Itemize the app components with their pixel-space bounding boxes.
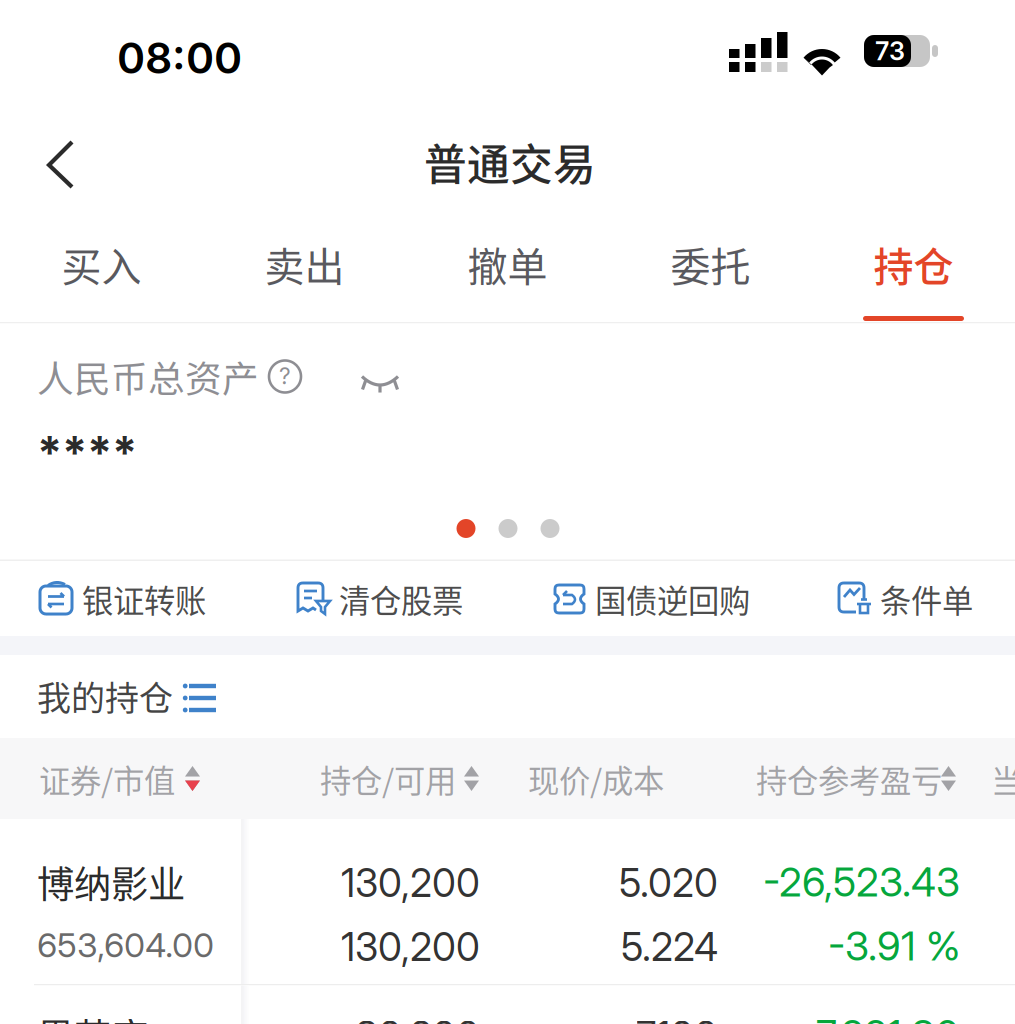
staticText: ****	[37, 425, 137, 480]
button[interactable]: 清仓股票	[295, 561, 510, 636]
staticText: ?	[279, 362, 291, 390]
staticText: 证券/市值	[39, 756, 175, 802]
staticText: 银证转账	[82, 576, 206, 622]
staticText: 5.020	[619, 860, 718, 906]
staticText: 130,200	[341, 924, 480, 970]
button[interactable]: Asset info	[269, 360, 301, 392]
staticText: 博纳影业	[37, 855, 185, 909]
staticText: 73	[875, 36, 905, 66]
staticText: 买入	[61, 235, 141, 293]
button[interactable]: 卖出	[203, 216, 406, 322]
staticText: 人民币总资产	[37, 350, 259, 403]
staticText: 卖出	[264, 235, 344, 293]
button[interactable]: 撤单	[406, 216, 609, 322]
staticText: 清仓股票	[339, 576, 463, 622]
staticText: 黑芝麻	[37, 1007, 148, 1024]
button[interactable]: 委托	[609, 216, 812, 322]
button[interactable]: 持仓	[812, 216, 1015, 322]
staticText: 30,200	[355, 1012, 480, 1024]
staticText: 国债逆回购	[595, 576, 750, 622]
button[interactable]: 博纳影业	[0, 819, 1015, 984]
staticText: 持仓参考盈亏	[756, 756, 942, 802]
staticText: 130,200	[341, 860, 480, 906]
staticText: -3.91 %	[828, 922, 960, 970]
staticText: 5.224	[621, 924, 718, 970]
staticText: 我的持仓	[37, 671, 173, 721]
staticText: 现价/成本	[528, 756, 664, 802]
staticText: 委托	[670, 235, 750, 293]
staticText: -7,281.30	[800, 1010, 960, 1024]
staticText: 条件单	[880, 576, 973, 622]
button[interactable]: 国债逆回购	[551, 561, 801, 636]
staticText: 当	[991, 756, 1015, 802]
staticText: 撤单	[467, 235, 547, 293]
staticText: 持仓	[873, 235, 953, 293]
button[interactable]: 银证转账	[38, 561, 253, 636]
staticText: 653,604.00	[37, 924, 214, 965]
staticText: 7.100	[636, 1012, 718, 1024]
staticText: 普通交易	[424, 131, 596, 193]
button[interactable]: Column settings	[183, 684, 216, 713]
staticText: -26,523.43	[763, 858, 960, 906]
staticText: 持仓/可用	[320, 756, 456, 802]
button[interactable]: Show balance	[360, 373, 400, 395]
button[interactable]: 买入	[0, 216, 203, 322]
button[interactable]: Back	[16, 125, 106, 205]
button[interactable]: 黑芝麻	[0, 985, 1015, 1024]
staticText: 08:00	[117, 32, 242, 84]
button[interactable]: 条件单	[836, 561, 1015, 636]
